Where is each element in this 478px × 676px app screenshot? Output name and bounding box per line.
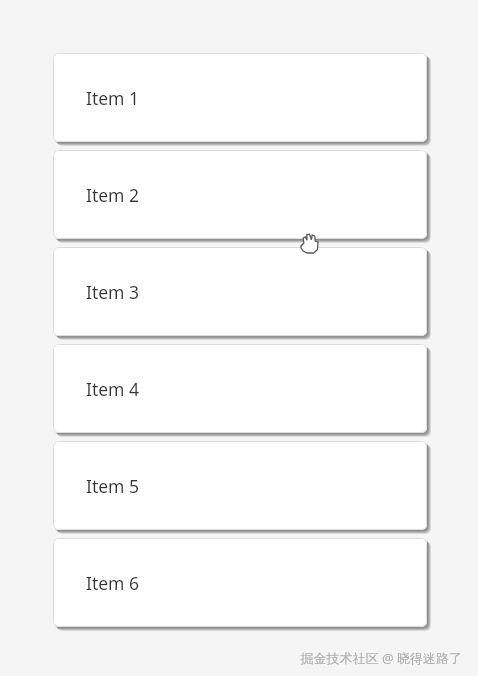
- button[interactable]: Item 1: [53, 53, 427, 142]
- other: Pointer: [300, 233, 319, 253]
- staticText: Item 2: [86, 183, 140, 207]
- staticText: 掘金技术社区 @ 晓得迷路了: [300, 649, 462, 667]
- staticText: Item 1: [86, 86, 140, 110]
- button[interactable]: Item 2: [53, 150, 427, 239]
- staticText: Item 3: [86, 280, 140, 304]
- button[interactable]: Item 4: [53, 344, 427, 433]
- button[interactable]: Item 6: [53, 538, 427, 627]
- staticText: Item 5: [86, 474, 140, 498]
- button[interactable]: Item 3: [53, 247, 427, 336]
- staticText: Item 4: [86, 377, 140, 401]
- staticText: Item 6: [86, 571, 140, 595]
- button[interactable]: Item 5: [53, 441, 427, 530]
